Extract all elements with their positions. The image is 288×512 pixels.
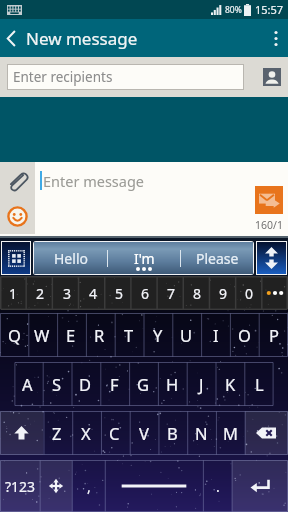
- button[interactable]: Attach: [0, 162, 35, 200]
- staticText: Enter recipients: [13, 68, 113, 86]
- staticText: 4: [89, 284, 98, 303]
- staticText: 1: [9, 284, 18, 303]
- button[interactable]: 9: [210, 276, 236, 310]
- button[interactable]: 0: [236, 276, 262, 310]
- button[interactable]: R: [85, 313, 114, 357]
- button[interactable]: Send message: [255, 186, 283, 214]
- button[interactable]: N: [187, 411, 216, 455]
- staticText: Y: [153, 324, 163, 346]
- button[interactable]: ?123: [0, 460, 40, 512]
- button[interactable]: Space: [105, 460, 203, 512]
- staticText: 0: [245, 284, 254, 303]
- staticText: 9: [219, 284, 228, 303]
- button[interactable]: 1: [0, 276, 27, 310]
- button[interactable]: L: [245, 362, 274, 406]
- button[interactable]: Change input method: [40, 460, 72, 512]
- button[interactable]: U: [172, 313, 201, 357]
- button[interactable]: M: [216, 411, 245, 455]
- button[interactable]: P: [259, 313, 288, 357]
- button[interactable]: O: [230, 313, 259, 357]
- button[interactable]: 2: [27, 276, 54, 310]
- button[interactable]: J: [187, 362, 216, 406]
- staticText: J: [199, 373, 204, 395]
- button[interactable]: S: [42, 362, 71, 406]
- button[interactable]: Q: [0, 313, 28, 357]
- staticText: E: [66, 324, 76, 346]
- button[interactable]: Delete: [245, 411, 288, 455]
- button[interactable]: I'm: [108, 242, 180, 274]
- staticText: ?123: [5, 477, 36, 496]
- button[interactable]: Insert emoticon: [0, 200, 35, 233]
- staticText: 5: [115, 284, 124, 303]
- staticText: Hello: [54, 249, 88, 268]
- button[interactable]: H: [158, 362, 187, 406]
- button[interactable]: .: [203, 460, 232, 512]
- button[interactable]: 4: [80, 276, 106, 310]
- staticText: F: [110, 373, 119, 395]
- button[interactable]: A: [13, 362, 42, 406]
- button[interactable]: Enter: [232, 460, 288, 512]
- button[interactable]: G: [129, 362, 158, 406]
- staticText: .: [216, 477, 220, 496]
- button[interactable]: Keyboard settings: [2, 242, 30, 274]
- button[interactable]: I: [201, 313, 230, 357]
- staticText: Q: [8, 324, 21, 346]
- button[interactable]: Please: [181, 242, 253, 274]
- staticText: M: [223, 422, 238, 444]
- staticText: 6: [141, 284, 150, 303]
- staticText: U: [180, 324, 193, 346]
- staticText: L: [255, 373, 264, 395]
- button[interactable]: F: [100, 362, 129, 406]
- staticText: 160/1: [255, 218, 283, 232]
- button[interactable]: Enter recipients: [7, 64, 244, 90]
- button[interactable]: X: [71, 411, 100, 455]
- staticText: D: [79, 373, 92, 395]
- staticText: 7: [167, 284, 176, 303]
- button[interactable]: More symbols: [262, 276, 288, 310]
- button[interactable]: D: [71, 362, 100, 406]
- button[interactable]: 7: [158, 276, 184, 310]
- button[interactable]: K: [216, 362, 245, 406]
- staticText: B: [167, 422, 178, 444]
- staticText: Z: [52, 422, 62, 444]
- staticText: N: [195, 422, 208, 444]
- button[interactable]: Select contacts: [256, 57, 288, 97]
- staticText: 8: [193, 284, 202, 303]
- staticText: V: [139, 422, 149, 444]
- staticText: C: [109, 422, 120, 444]
- button[interactable]: V: [129, 411, 158, 455]
- staticText: R: [94, 324, 105, 346]
- staticText: ,: [87, 477, 91, 496]
- staticText: New message: [26, 27, 138, 50]
- button[interactable]: 8: [184, 276, 210, 310]
- button[interactable]: ,: [72, 460, 105, 512]
- button[interactable]: 3: [54, 276, 80, 310]
- staticText: O: [238, 324, 251, 346]
- button[interactable]: C: [100, 411, 129, 455]
- staticText: S: [52, 373, 62, 395]
- button[interactable]: Shift: [0, 411, 43, 455]
- staticText: 80%: [225, 4, 242, 16]
- button[interactable]: Show more suggestions: [257, 242, 286, 274]
- button[interactable]: B: [158, 411, 187, 455]
- staticText: K: [225, 373, 236, 395]
- button[interactable]: More options: [264, 19, 288, 57]
- button[interactable]: W: [28, 313, 56, 357]
- staticText: 3: [63, 284, 72, 303]
- button[interactable]: E: [56, 313, 85, 357]
- staticText: I: [213, 324, 219, 346]
- button[interactable]: 5: [106, 276, 132, 310]
- staticText: G: [137, 373, 150, 395]
- staticText: A: [22, 373, 33, 395]
- staticText: P: [269, 324, 279, 346]
- button[interactable]: Navigate up: [0, 19, 23, 57]
- staticText: H: [166, 373, 179, 395]
- button[interactable]: Z: [43, 411, 71, 455]
- staticText: W: [34, 324, 50, 346]
- button[interactable]: Hello: [34, 242, 107, 274]
- button[interactable]: 6: [132, 276, 158, 310]
- staticText: 2: [36, 284, 45, 303]
- button[interactable]: T: [114, 313, 143, 357]
- staticText: I'm: [134, 249, 155, 268]
- button[interactable]: Y: [143, 313, 172, 357]
